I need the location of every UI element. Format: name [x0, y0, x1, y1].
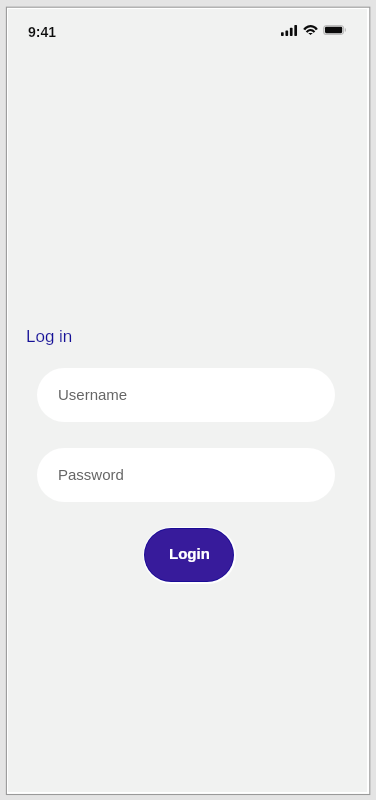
staticText: Password — [58, 466, 124, 483]
staticText: 9:41 — [28, 24, 57, 40]
other: Cellular signal — [281, 25, 297, 36]
staticText: Username — [58, 386, 128, 403]
other: Wi-Fi — [303, 25, 318, 35]
staticText: Login — [169, 545, 210, 562]
button[interactable]: Password — [37, 448, 335, 502]
button[interactable]: Login — [145, 529, 233, 581]
button[interactable]: Username — [37, 368, 335, 422]
staticText: Log in — [26, 327, 73, 346]
other: Battery — [323, 25, 346, 35]
